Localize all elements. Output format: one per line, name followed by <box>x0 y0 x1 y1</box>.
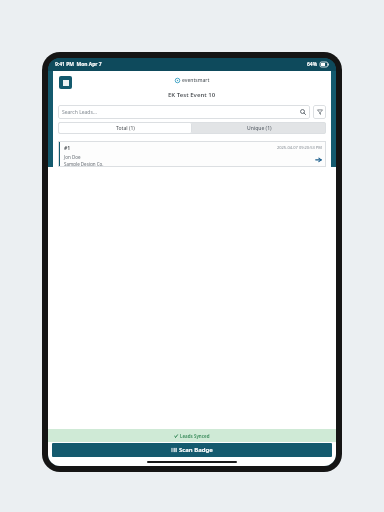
staticText: Scan Badge <box>179 446 213 454</box>
button[interactable]: Unique (1) <box>192 122 326 134</box>
button[interactable]: Menu <box>59 76 72 89</box>
staticText: Unique (1) <box>247 125 272 132</box>
staticText: Leads Synced <box>180 433 210 439</box>
staticText: 2025-04-07 09:20:53 PM <box>277 145 322 150</box>
staticText: EK Test Event 10 <box>168 91 216 99</box>
staticText: Sample Design Co. <box>64 161 104 167</box>
button[interactable]: #1 <box>58 141 326 167</box>
staticText: Total (1) <box>116 125 135 132</box>
staticText: Search Leads... <box>62 109 97 116</box>
button[interactable]: Filter <box>313 105 326 119</box>
button[interactable]: Search Leads... <box>58 105 310 119</box>
button[interactable]: Scan Badge <box>52 443 332 457</box>
staticText: 9:41 PM Mon Apr 7 <box>55 61 102 68</box>
staticText: Jon Doe <box>64 154 81 160</box>
button[interactable]: Total (1) <box>58 122 192 134</box>
staticText: eventsmart <box>182 77 210 84</box>
staticText: #1 <box>64 145 71 152</box>
staticText: 64% <box>307 61 318 68</box>
